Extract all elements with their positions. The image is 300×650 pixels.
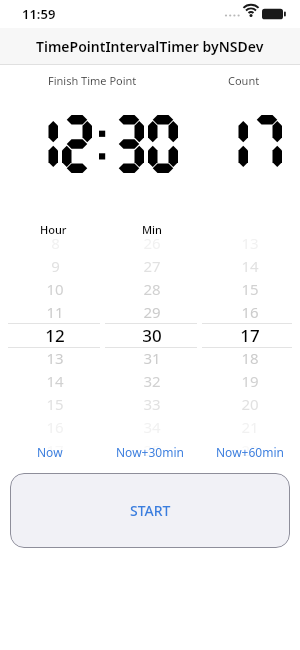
staticText: 34 <box>143 417 161 437</box>
button[interactable]: Now+60min <box>200 439 300 465</box>
staticText: 14 <box>46 371 64 391</box>
staticText: 17 <box>46 440 64 460</box>
staticText: 35 <box>143 440 161 460</box>
staticText: 14 <box>241 256 259 276</box>
staticText: 11:59 <box>22 5 56 23</box>
staticText: 29 <box>143 302 161 322</box>
staticText: Now+30min <box>116 444 184 460</box>
staticText: 33 <box>143 394 161 414</box>
button[interactable]: 9 <box>25 255 85 277</box>
staticText: Count <box>228 73 260 88</box>
staticText: Finish Time Point <box>48 73 137 88</box>
button[interactable]: 17 <box>220 324 280 346</box>
button[interactable]: 35 <box>122 439 182 461</box>
staticText: 27 <box>143 256 161 276</box>
button[interactable]: 30 <box>122 324 182 346</box>
button[interactable]: 12 <box>25 324 85 346</box>
button[interactable]: 32 <box>122 370 182 392</box>
staticText: 21 <box>241 417 259 437</box>
staticText: 28 <box>143 279 161 299</box>
staticText: 13 <box>46 348 64 368</box>
staticText: Min <box>142 222 162 237</box>
button[interactable]: 33 <box>122 393 182 415</box>
staticText: 31 <box>143 348 161 368</box>
staticText: 15 <box>46 394 64 414</box>
button[interactable]: 11 <box>25 301 85 323</box>
staticText: 8 <box>51 233 60 253</box>
button[interactable]: 17 <box>25 439 85 461</box>
button[interactable]: 28 <box>122 278 182 300</box>
button[interactable]: 16 <box>220 301 280 323</box>
button[interactable]: 14 <box>220 255 280 277</box>
staticText: TimePointIntervalTimer byNSDev <box>36 37 264 56</box>
button[interactable]: 27 <box>122 255 182 277</box>
staticText: 17 <box>240 324 260 346</box>
button[interactable]: Now+30min <box>100 439 200 465</box>
button[interactable]: 14 <box>25 370 85 392</box>
staticText: 22 <box>241 440 259 460</box>
button[interactable]: 15 <box>25 393 85 415</box>
button[interactable]: Now <box>0 439 100 465</box>
staticText: 32 <box>143 371 161 391</box>
button[interactable]: 15 <box>220 278 280 300</box>
staticText: 12 <box>45 324 65 346</box>
staticText: 26 <box>143 233 161 253</box>
staticText: 20 <box>241 394 259 414</box>
staticText: 10 <box>46 279 64 299</box>
staticText: 9 <box>51 256 60 276</box>
staticText: 15 <box>241 279 259 299</box>
staticText: START <box>130 501 171 520</box>
staticText: Now+60min <box>216 444 284 460</box>
button[interactable]: 13 <box>25 347 85 369</box>
staticText: 30 <box>142 324 162 346</box>
button[interactable]: 26 <box>122 232 182 254</box>
button[interactable]: 22 <box>220 439 280 461</box>
staticText: Hour <box>40 222 67 237</box>
staticText: 19 <box>241 371 259 391</box>
button[interactable]: 18 <box>220 347 280 369</box>
button[interactable]: 20 <box>220 393 280 415</box>
button[interactable]: 19 <box>220 370 280 392</box>
staticText: Now <box>37 444 63 460</box>
button[interactable]: 10 <box>25 278 85 300</box>
button[interactable]: START <box>10 473 290 548</box>
button[interactable]: 8 <box>25 232 85 254</box>
button[interactable]: 29 <box>122 301 182 323</box>
button[interactable]: 31 <box>122 347 182 369</box>
staticText: 11 <box>46 302 64 322</box>
staticText: 16 <box>46 417 64 437</box>
staticText: 13 <box>241 233 259 253</box>
staticText: 18 <box>241 348 259 368</box>
staticText: 16 <box>241 302 259 322</box>
